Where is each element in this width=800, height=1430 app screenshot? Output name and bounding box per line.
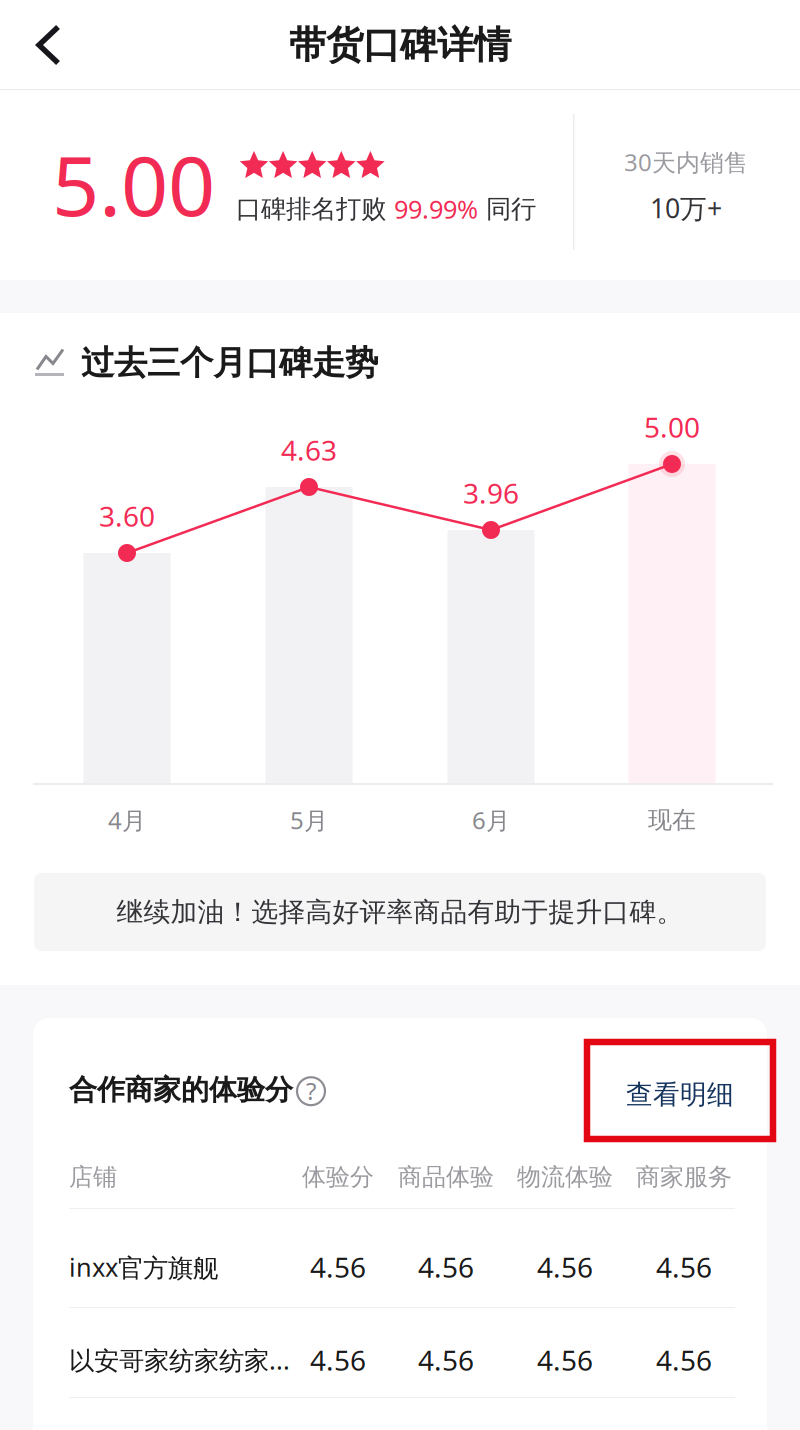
staticText: 5.00 [644,408,700,446]
staticText: inxx官方旗舰 [69,1250,218,1284]
staticText: 合作商家的体验分 [69,1073,293,1107]
staticText: 4.56 [537,1248,593,1286]
staticText: 5月 [290,804,328,836]
staticText: 4.56 [418,1341,474,1379]
staticText: 4.56 [310,1341,366,1379]
staticText: ? [306,1075,316,1107]
staticText: 6月 [472,804,510,836]
staticText: 3.96 [463,474,519,512]
staticText: 继续加油！选择高好评率商品有助于提升口碑。 [116,896,683,928]
staticText: 4.63 [281,431,337,469]
staticText: 带货口碑详情 [289,22,511,68]
staticText: 5.00 [52,129,215,239]
staticText: 以安哥家纺家纺家... [69,1343,290,1377]
staticText: 3.60 [99,497,155,535]
staticText: 4.56 [537,1341,593,1379]
staticText: 10万+ [650,190,722,226]
staticText: 商家服务 [636,1162,732,1192]
staticText: 过去三个月口碑走势 [81,342,378,383]
staticText: 店铺 [69,1162,117,1192]
staticText: 物流体验 [517,1162,613,1192]
staticText: 4.56 [656,1341,712,1379]
staticText: 查看明细 [626,1078,734,1111]
button[interactable]: 查看明细 [587,1042,773,1139]
staticText: 口碑排名打败 [236,193,394,224]
staticText: 30天内销售 [624,146,748,178]
staticText: 4月 [108,804,146,836]
staticText: 4.56 [310,1248,366,1286]
staticText: 99.99% [394,192,478,226]
staticText: 现在 [648,805,696,835]
staticText: 同行 [478,193,536,224]
button[interactable]: Back [14,0,84,90]
staticText: 体验分 [302,1162,374,1192]
staticText: 4.56 [418,1248,474,1286]
staticText: 4.56 [656,1248,712,1286]
staticText: 商品体验 [398,1162,494,1192]
